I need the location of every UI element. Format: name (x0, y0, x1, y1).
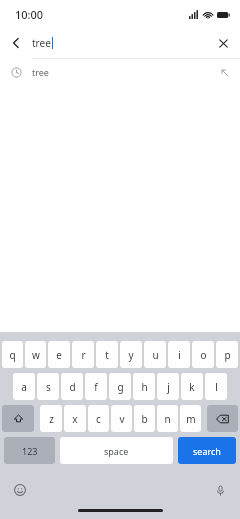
button[interactable]: r (72, 341, 94, 368)
staticText: s (46, 380, 51, 394)
button[interactable]: Clear (206, 28, 240, 58)
button[interactable]: a (13, 373, 35, 400)
button[interactable]: e (48, 341, 70, 368)
button[interactable]: l (205, 373, 227, 400)
button[interactable]: v (111, 405, 132, 432)
staticText: a (21, 380, 27, 394)
button[interactable]: n (157, 405, 178, 432)
button[interactable]: c (88, 405, 109, 432)
staticText: f (94, 380, 98, 394)
staticText: i (178, 348, 181, 362)
button[interactable]: d (61, 373, 83, 400)
button[interactable]: Insert suggestion (208, 59, 240, 85)
button[interactable]: search (178, 437, 236, 464)
button[interactable]: Emoji (12, 482, 28, 498)
staticText: k (189, 380, 195, 394)
button[interactable]: x (64, 405, 86, 432)
button[interactable]: w (25, 341, 46, 368)
staticText: j (167, 380, 170, 394)
button[interactable]: space (60, 437, 173, 464)
button[interactable]: Shift (2, 405, 34, 432)
staticText: 123 (22, 445, 38, 457)
button[interactable]: g (109, 373, 131, 400)
button[interactable]: m (180, 405, 201, 432)
staticText: r (81, 348, 86, 362)
staticText: x (72, 412, 78, 426)
button[interactable]: i (168, 341, 190, 368)
staticText: q (9, 348, 16, 362)
staticText: h (141, 380, 148, 394)
staticText: w (32, 348, 40, 362)
button[interactable]: j (157, 373, 179, 400)
staticText: space (104, 445, 129, 457)
staticText: e (56, 348, 62, 362)
staticText: tree (32, 36, 51, 50)
staticText: y (128, 348, 134, 362)
button[interactable]: f (85, 373, 107, 400)
button[interactable]: o (192, 341, 214, 368)
staticText: m (186, 412, 196, 426)
staticText: l (215, 380, 218, 394)
button[interactable]: Backspace (207, 405, 238, 432)
button[interactable]: t (96, 341, 118, 368)
staticText: b (141, 412, 148, 426)
staticText: u (152, 348, 159, 362)
button[interactable]: 123 (4, 437, 55, 464)
button[interactable]: z (40, 405, 62, 432)
staticText: n (164, 412, 171, 426)
staticText: 10:00 (15, 7, 44, 22)
button[interactable]: k (181, 373, 203, 400)
staticText: z (49, 412, 54, 426)
staticText: g (117, 380, 124, 394)
staticText: tree (32, 66, 49, 78)
button[interactable]: tree (0, 59, 240, 85)
button[interactable]: Voice input (212, 482, 228, 498)
button[interactable]: s (37, 373, 59, 400)
button[interactable]: h (133, 373, 155, 400)
button[interactable]: Back (0, 28, 32, 58)
staticText: o (200, 348, 207, 362)
staticText: d (69, 380, 76, 394)
staticText: t (105, 348, 109, 362)
button[interactable]: p (216, 341, 238, 368)
staticText: search (193, 445, 221, 457)
staticText: v (119, 412, 125, 426)
button[interactable]: b (134, 405, 155, 432)
staticText: c (96, 412, 101, 426)
button[interactable]: q (2, 341, 23, 368)
button[interactable]: u (144, 341, 166, 368)
button[interactable]: y (120, 341, 142, 368)
staticText: p (224, 348, 231, 362)
